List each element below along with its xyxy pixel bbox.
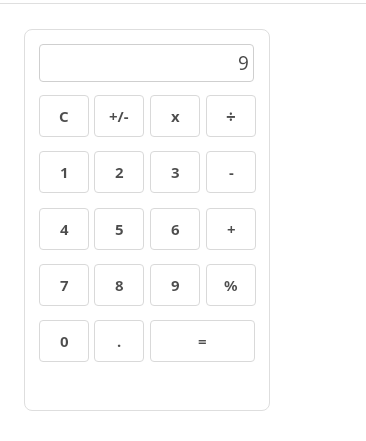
staticText: 3 (171, 162, 180, 182)
button[interactable]: % (206, 264, 256, 306)
button[interactable]: - (206, 151, 256, 193)
staticText: + (227, 219, 236, 239)
staticText: 0 (60, 331, 69, 351)
staticText: +/- (109, 106, 129, 126)
staticText: 4 (60, 219, 69, 239)
button[interactable]: 5 (94, 208, 144, 250)
staticText: = (198, 331, 207, 351)
button[interactable]: 7 (39, 264, 89, 306)
staticText: % (224, 275, 238, 295)
button[interactable]: 3 (150, 151, 200, 193)
staticText: 9 (238, 50, 249, 76)
staticText: 6 (171, 219, 180, 239)
staticText: C (59, 106, 69, 126)
staticText: 9 (171, 275, 180, 295)
staticText: . (117, 331, 122, 351)
button[interactable]: + (206, 208, 256, 250)
button[interactable]: 1 (39, 151, 89, 193)
button[interactable]: 8 (94, 264, 144, 306)
button[interactable]: = (150, 320, 255, 362)
staticText: 1 (60, 162, 69, 182)
staticText: 8 (115, 275, 124, 295)
staticText: ÷ (226, 105, 236, 128)
button[interactable]: 2 (94, 151, 144, 193)
button[interactable]: 9 (39, 44, 254, 82)
staticText: 7 (60, 275, 69, 295)
button[interactable]: 6 (150, 208, 200, 250)
staticText: - (229, 162, 234, 182)
button[interactable]: 4 (39, 208, 89, 250)
button[interactable]: 0 (39, 320, 89, 362)
button[interactable]: x (150, 95, 200, 137)
button[interactable]: +/- (94, 95, 144, 137)
button[interactable]: C (39, 95, 89, 137)
staticText: 2 (115, 162, 124, 182)
button[interactable]: . (94, 320, 144, 362)
staticText: x (171, 106, 180, 126)
staticText: 5 (115, 219, 124, 239)
button[interactable]: 9 (150, 264, 200, 306)
button[interactable]: ÷ (206, 95, 256, 137)
